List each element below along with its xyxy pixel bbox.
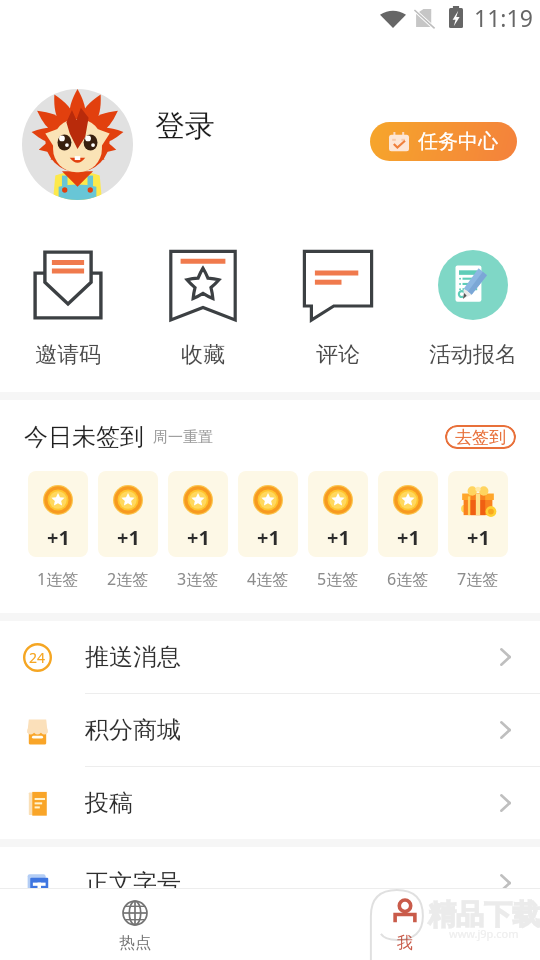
button[interactable]: +1: [28, 471, 88, 557]
button[interactable]: 24: [0, 621, 540, 694]
button[interactable]: 登录: [155, 107, 215, 145]
button[interactable]: 去签到: [445, 425, 516, 449]
staticText: 精品下载: [428, 897, 540, 932]
staticText: 6连签: [387, 568, 429, 590]
button[interactable]: +1: [448, 471, 508, 557]
button[interactable]: 投稿: [0, 767, 540, 839]
staticText: 正文字号: [85, 868, 181, 898]
button[interactable]: 评论: [270, 225, 405, 392]
button[interactable]: +1: [98, 471, 158, 557]
staticText: +1: [397, 524, 420, 551]
staticText: 任务中心: [418, 129, 498, 154]
button[interactable]: +1: [238, 471, 298, 557]
staticText: 11:19: [474, 2, 533, 33]
staticText: 5连签: [317, 568, 359, 590]
staticText: 24: [29, 648, 46, 667]
staticText: 4连签: [247, 568, 289, 590]
staticText: 收藏: [181, 341, 225, 369]
staticText: 热点: [119, 933, 151, 953]
staticText: 7连签: [457, 568, 499, 590]
button[interactable]: 任务中心: [370, 122, 517, 161]
staticText: 今日未签到: [24, 422, 144, 452]
staticText: 2连签: [107, 568, 149, 590]
button[interactable]: Avatar: [22, 89, 133, 200]
staticText: +1: [257, 524, 280, 551]
staticText: 邀请码: [35, 341, 101, 369]
staticText: +1: [117, 524, 140, 551]
staticText: 1连签: [37, 568, 79, 590]
staticText: 评论: [316, 341, 360, 369]
staticText: 我: [397, 933, 413, 953]
button[interactable]: +1: [378, 471, 438, 557]
staticText: 去签到: [455, 427, 506, 448]
button[interactable]: +1: [168, 471, 228, 557]
staticText: 活动报名: [429, 341, 517, 369]
staticText: +1: [47, 524, 70, 551]
staticText: 周一重置: [153, 428, 213, 447]
button[interactable]: 活动报名: [405, 225, 540, 392]
staticText: 3连签: [177, 568, 219, 590]
button[interactable]: 我: [270, 889, 540, 960]
button[interactable]: 热点: [0, 889, 270, 960]
button[interactable]: 邀请码: [0, 225, 135, 392]
button[interactable]: 收藏: [135, 225, 270, 392]
staticText: 投稿: [85, 788, 133, 818]
staticText: www.j9p.com: [449, 926, 519, 941]
staticText: 积分商城: [85, 715, 181, 745]
staticText: +1: [187, 524, 210, 551]
staticText: 推送消息: [85, 642, 181, 672]
staticText: +1: [327, 524, 350, 551]
button[interactable]: 积分商城: [0, 694, 540, 767]
button[interactable]: +1: [308, 471, 368, 557]
staticText: 登录: [155, 107, 215, 145]
button[interactable]: 正文字号: [0, 847, 540, 919]
staticText: +1: [467, 524, 490, 551]
